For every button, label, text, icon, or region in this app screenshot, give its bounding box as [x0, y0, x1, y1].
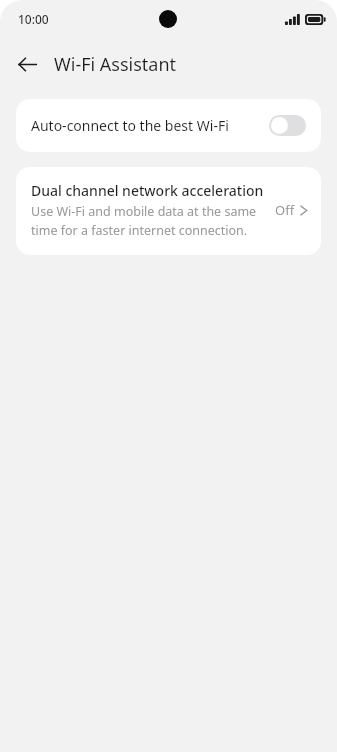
staticText: Dual channel network acceleration	[31, 181, 264, 200]
staticText: 10:00	[18, 11, 49, 27]
staticText: Off	[275, 201, 295, 219]
button[interactable]: Auto-connect toggle	[269, 115, 306, 136]
button[interactable]: Back	[6, 43, 48, 85]
staticText: Wi-Fi Assistant	[54, 52, 177, 77]
staticText: Use Wi-Fi and mobile data at the same ti…	[31, 203, 267, 239]
staticText: Auto-connect to the best Wi-Fi	[31, 116, 269, 135]
button[interactable]: Auto-connect to the best Wi-Fi	[16, 99, 321, 152]
button[interactable]: Dual channel network acceleration	[16, 167, 321, 255]
